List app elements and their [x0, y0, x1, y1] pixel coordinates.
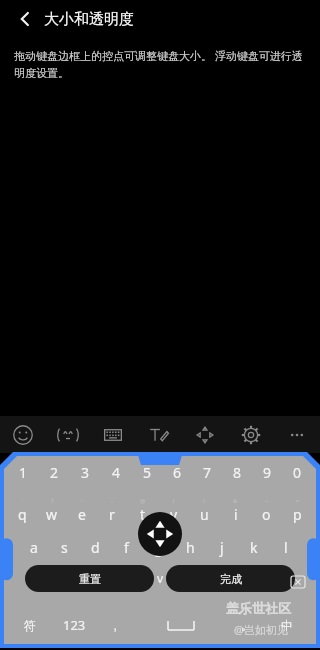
- staticText: 6: [173, 463, 182, 482]
- staticText: &: [233, 497, 238, 505]
- button[interactable]: 9: [252, 462, 282, 482]
- staticText: 123: [63, 616, 86, 634]
- button[interactable]: 6: [162, 462, 192, 482]
- staticText: k: [250, 538, 258, 557]
- staticText: 中: [281, 618, 293, 633]
- staticText: r: [109, 505, 115, 523]
- staticText: 8: [233, 463, 242, 482]
- button[interactable]: 3: [70, 462, 101, 482]
- button[interactable]: Settings: [228, 416, 274, 453]
- button[interactable]: h: [174, 536, 206, 558]
- staticText: ': [22, 497, 24, 505]
- button[interactable]: 1: [8, 462, 39, 482]
- staticText: 。: [241, 618, 253, 633]
- button[interactable]: Keyboard: [90, 416, 136, 453]
- staticText: d: [91, 538, 100, 557]
- staticText: 大小和透明度: [44, 10, 134, 29]
- button[interactable]: a: [18, 536, 49, 558]
- button[interactable]: s: [49, 536, 80, 558]
- button[interactable]: ，: [98, 612, 132, 638]
- button[interactable]: :: [67, 497, 97, 523]
- staticText: g: [154, 538, 163, 557]
- button[interactable]: @: [127, 497, 158, 523]
- button[interactable]: /: [189, 497, 220, 523]
- staticText: i: [234, 505, 238, 523]
- button[interactable]: 0: [282, 462, 312, 482]
- button[interactable]: Delete: [291, 576, 305, 588]
- staticText: 0: [293, 463, 302, 482]
- staticText: /: [203, 497, 206, 505]
- button[interactable]: 4: [101, 462, 132, 482]
- staticText: 符: [24, 618, 36, 633]
- button[interactable]: !: [158, 497, 189, 523]
- staticText: x: [83, 570, 90, 586]
- button[interactable]: Floating keyboard: [0, 452, 320, 648]
- button[interactable]: More: [274, 416, 320, 453]
- staticText: !: [173, 497, 175, 505]
- staticText: t: [140, 505, 146, 523]
- staticText: 7: [203, 463, 212, 482]
- staticText: 2: [50, 463, 59, 482]
- button[interactable]: Back: [10, 4, 40, 34]
- staticText: e: [78, 505, 86, 523]
- button[interactable]: 符: [10, 612, 50, 638]
- button[interactable]: Space: [132, 612, 230, 638]
- button[interactable]: -: [97, 497, 127, 523]
- staticText: 1: [19, 463, 28, 482]
- staticText: 拖动键盘边框上的控点可调整键盘大小。 浮动键盘可进行透 明度设置。: [14, 48, 303, 80]
- staticText: n: [231, 570, 239, 586]
- button[interactable]: f: [111, 536, 142, 558]
- button[interactable]: ?: [37, 497, 67, 523]
- staticText: 重置: [79, 572, 101, 586]
- button[interactable]: Handwriting: [136, 416, 182, 453]
- staticText: =: [296, 497, 300, 505]
- staticText: @岂如初见: [234, 622, 288, 637]
- button[interactable]: 7: [192, 462, 222, 482]
- button[interactable]: 完成: [166, 565, 295, 592]
- button[interactable]: g: [142, 536, 174, 558]
- button[interactable]: 。: [230, 612, 264, 638]
- button[interactable]: 中: [264, 612, 310, 638]
- staticText: u: [200, 505, 209, 523]
- staticText: ，: [109, 618, 121, 633]
- button[interactable]: &: [220, 497, 251, 523]
- staticText: p: [293, 505, 302, 523]
- button[interactable]: Kaomoji: [45, 416, 90, 453]
- button[interactable]: 8: [222, 462, 252, 482]
- button[interactable]: ~: [251, 497, 282, 523]
- button[interactable]: j: [206, 536, 238, 558]
- staticText: @: [140, 497, 146, 505]
- button[interactable]: Move keyboard: [138, 512, 182, 556]
- staticText: f: [124, 538, 129, 557]
- button[interactable]: 重置: [25, 565, 154, 592]
- staticText: 盖乐世社区: [226, 600, 291, 616]
- button[interactable]: l: [270, 536, 302, 558]
- staticText: ?: [51, 497, 54, 505]
- staticText: 3: [81, 463, 90, 482]
- staticText: v: [157, 570, 164, 586]
- button[interactable]: 5: [132, 462, 162, 482]
- staticText: w: [46, 505, 58, 523]
- staticText: o: [262, 505, 271, 523]
- staticText: l: [284, 538, 288, 557]
- staticText: s: [61, 538, 68, 557]
- button[interactable]: d: [80, 536, 111, 558]
- button[interactable]: ': [7, 497, 37, 523]
- button[interactable]: k: [238, 536, 270, 558]
- button[interactable]: Move: [182, 416, 228, 453]
- staticText: 5: [143, 463, 152, 482]
- button[interactable]: 123: [50, 612, 98, 638]
- button[interactable]: Emoji: [0, 416, 45, 453]
- staticText: 完成: [220, 572, 242, 586]
- staticText: q: [18, 505, 27, 523]
- staticText: y: [170, 505, 178, 523]
- staticText: 4: [112, 463, 121, 482]
- button[interactable]: 2: [39, 462, 70, 482]
- button[interactable]: =: [282, 497, 313, 523]
- staticText: h: [186, 538, 195, 557]
- staticText: 9: [263, 463, 272, 482]
